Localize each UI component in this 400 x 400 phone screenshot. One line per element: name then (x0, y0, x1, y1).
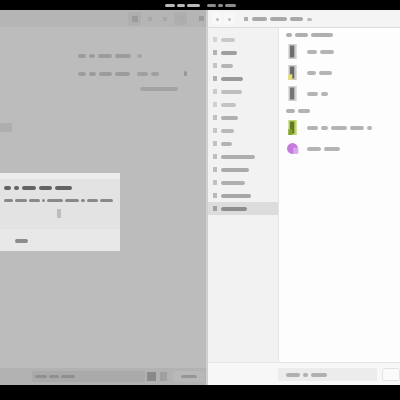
button[interactable] (208, 163, 278, 176)
button[interactable] (208, 85, 278, 98)
button[interactable] (208, 72, 278, 85)
button[interactable] (208, 46, 278, 59)
button[interactable]: Forward (224, 13, 234, 25)
button[interactable] (8, 235, 34, 246)
button[interactable] (279, 41, 400, 62)
button[interactable]: Back (212, 13, 222, 25)
button[interactable] (208, 98, 278, 111)
button[interactable]: Open (382, 368, 400, 381)
button[interactable] (208, 150, 278, 163)
button[interactable] (208, 111, 278, 124)
button[interactable] (279, 83, 400, 104)
button[interactable]: Tool 2 (144, 12, 156, 25)
button[interactable] (208, 202, 278, 215)
button[interactable] (208, 33, 278, 46)
button[interactable] (208, 137, 278, 150)
button[interactable] (208, 124, 278, 137)
button[interactable] (173, 371, 205, 382)
button[interactable] (32, 371, 145, 382)
button[interactable] (279, 62, 400, 83)
button[interactable] (208, 59, 278, 72)
button[interactable] (208, 189, 278, 202)
button[interactable] (279, 117, 400, 138)
button[interactable] (278, 368, 377, 381)
button[interactable] (252, 17, 312, 21)
button[interactable]: Tool 5 (196, 12, 206, 25)
button[interactable] (279, 138, 400, 159)
button[interactable]: Tool 3 (159, 12, 171, 25)
button[interactable]: Tool (128, 12, 141, 25)
button[interactable] (208, 176, 278, 189)
